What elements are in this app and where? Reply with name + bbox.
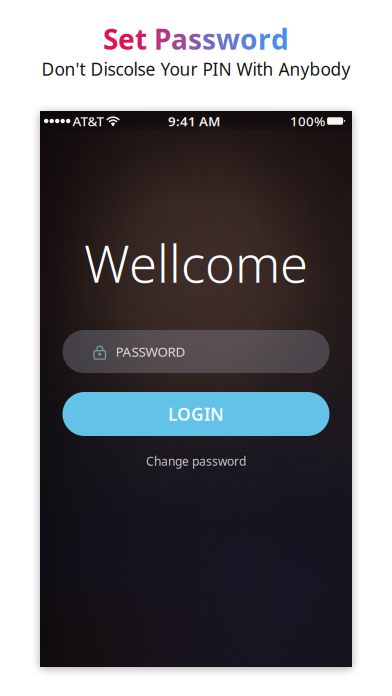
staticText: s [188, 20, 202, 58]
staticText: PASSWORD [115, 343, 185, 360]
staticText: S [103, 20, 118, 58]
staticText: r [258, 20, 271, 58]
staticText: t [135, 20, 147, 58]
staticText: d [271, 20, 289, 58]
staticText: P [154, 20, 171, 58]
staticText: e [118, 20, 135, 58]
staticText: LOGIN [168, 402, 224, 425]
staticText: w [216, 20, 240, 58]
staticText: 100% [290, 112, 325, 130]
staticText: Wellcome [84, 229, 308, 297]
staticText: a [171, 20, 188, 58]
staticText: Don't Discolse Your PIN With Anybody [41, 57, 350, 80]
staticText: Change password [146, 453, 246, 469]
button[interactable]: Change password [40, 452, 352, 470]
staticText: s [202, 20, 216, 58]
staticText: o [240, 20, 258, 58]
staticText: 9:41 AM [168, 112, 220, 130]
button[interactable]: LOGIN [62, 392, 329, 436]
staticText: AT&T [72, 112, 103, 130]
